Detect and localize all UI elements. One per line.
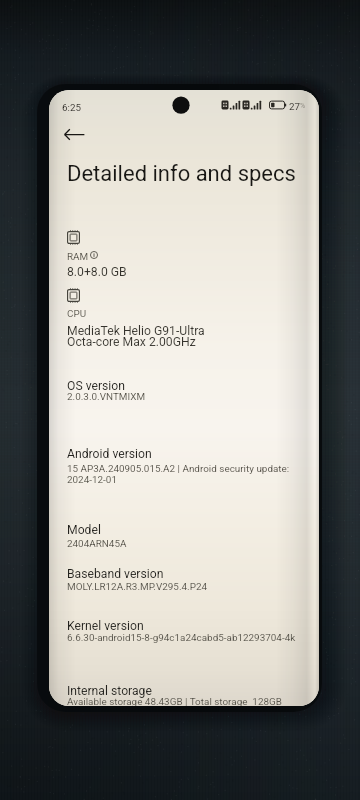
staticText: 2024-12-01	[67, 474, 117, 486]
button[interactable]	[49, 613, 319, 643]
button[interactable]	[49, 561, 319, 591]
staticText: 2.0.3.0.VNTMIXM	[67, 391, 146, 403]
button[interactable]	[49, 373, 319, 403]
staticText: Internal storage	[67, 684, 152, 698]
staticText: RAM	[67, 251, 89, 263]
staticText: 6:25	[62, 102, 81, 113]
staticText: %	[300, 102, 306, 110]
staticText: Octa-core Max 2.00GHz	[67, 335, 196, 349]
staticText: CPU	[67, 308, 87, 320]
staticText: MediaTek Helio G91-Ultra	[67, 324, 205, 338]
staticText: 15 AP3A.240905.015.A2 | Android security…	[67, 463, 290, 475]
staticText: Kernel version	[67, 619, 144, 633]
button[interactable]	[49, 517, 319, 547]
button[interactable]: Back	[55, 115, 93, 153]
staticText: Baseband version	[67, 567, 164, 581]
button[interactable]	[49, 678, 319, 706]
staticText: Available storage 48.43GB | Total storag…	[67, 696, 282, 706]
staticText: 2404ARN45A	[67, 538, 127, 550]
staticText: 27	[289, 101, 301, 112]
staticText: 8.0+8.0 GB	[67, 265, 127, 279]
staticText: Android version	[67, 447, 152, 461]
staticText: OS version	[67, 379, 125, 393]
button[interactable]	[49, 441, 319, 471]
staticText: Detailed info and specs	[67, 161, 296, 187]
staticText: Model	[67, 523, 101, 537]
staticText: MOLY.LR12A.R3.MP.V295.4.P24	[67, 581, 208, 593]
staticText: 6.6.30-android15-8-g94c1a24cabd5-ab12293…	[67, 632, 296, 644]
